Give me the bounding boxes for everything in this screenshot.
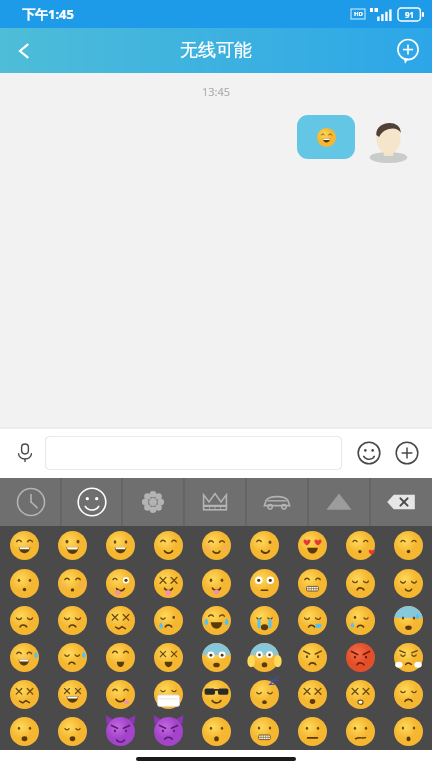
button[interactable]: WEARY xyxy=(96,639,144,676)
button[interactable]: NEUTRAL xyxy=(288,713,336,750)
button[interactable]: GRIN xyxy=(96,526,144,564)
button[interactable]: KISS_SMILE xyxy=(48,564,96,602)
button[interactable]: Voice message xyxy=(8,436,42,470)
button[interactable]: WINK xyxy=(240,526,288,564)
button[interactable]: Places xyxy=(246,478,308,526)
button[interactable]: Recent xyxy=(0,478,61,526)
button[interactable]: Add xyxy=(384,28,432,73)
button[interactable]: WINK_TONGUE xyxy=(96,564,144,602)
button[interactable]: FEARFUL xyxy=(192,639,240,676)
button[interactable]: KISS_PLAIN xyxy=(0,564,48,602)
button[interactable]: HUSHED xyxy=(384,713,432,750)
button[interactable]: GRIMACE xyxy=(288,564,336,602)
button[interactable]: LAUGH_SQUINT xyxy=(48,676,96,713)
button[interactable]: CONFUSED xyxy=(336,713,384,750)
button[interactable]: DIZZY xyxy=(288,676,336,713)
staticText: 无线可能 xyxy=(180,39,252,62)
button[interactable]: YUM xyxy=(96,676,144,713)
button[interactable]: SWEAT xyxy=(48,639,96,676)
button[interactable]: More xyxy=(390,436,424,470)
button[interactable]: SWEAT_SMILE xyxy=(0,639,48,676)
button[interactable]: ANGRY xyxy=(288,639,336,676)
button[interactable]: WORRIED_TEAR xyxy=(336,602,384,639)
button[interactable]: FROWN xyxy=(384,676,432,713)
staticText: 13:45 xyxy=(0,84,432,99)
button[interactable] xyxy=(45,436,342,470)
button[interactable]: Avatar xyxy=(365,115,412,165)
button[interactable]: GRIN_OPEN xyxy=(48,526,96,564)
button[interactable]: TIRED xyxy=(144,639,192,676)
button[interactable]: KISS_RELAX xyxy=(384,526,432,564)
button[interactable]: Nature xyxy=(122,478,184,526)
button[interactable]: GRIN_SMILE_EYES xyxy=(0,526,48,564)
staticText: 91 xyxy=(405,9,415,20)
button[interactable]: OPEN_MOUTH xyxy=(192,713,240,750)
button[interactable]: DEVIL_ANGRY xyxy=(144,713,192,750)
button[interactable]: FLUSHED_BIG xyxy=(240,564,288,602)
button[interactable]: CONFOUNDED xyxy=(96,602,144,639)
button[interactable]: PENSIVE xyxy=(336,564,384,602)
button[interactable]: JOY xyxy=(192,602,240,639)
button[interactable] xyxy=(297,115,355,159)
button[interactable]: GRIMACE2 xyxy=(240,713,288,750)
staticText: 下午1:45 xyxy=(22,5,74,23)
button[interactable]: SLEEPING xyxy=(240,676,288,713)
button[interactable]: RAGE xyxy=(336,639,384,676)
button[interactable]: HEART_EYES xyxy=(288,526,336,564)
button[interactable]: KISS_HEART xyxy=(336,526,384,564)
button[interactable]: COLD_SWEAT2 xyxy=(384,602,432,639)
button[interactable]: TONGUE xyxy=(192,564,240,602)
button[interactable]: ANGUISH2 xyxy=(48,713,96,750)
button[interactable]: UNAMUSED2 xyxy=(0,602,48,639)
button[interactable]: Backspace xyxy=(370,478,432,526)
staticText: HD xyxy=(354,10,363,18)
button[interactable]: SQUINT_TONGUE xyxy=(144,564,192,602)
button[interactable]: DIZZY2 xyxy=(336,676,384,713)
button[interactable]: Symbols xyxy=(308,478,370,526)
button[interactable]: ANGUISH xyxy=(0,713,48,750)
button[interactable]: Smileys xyxy=(61,478,122,526)
button[interactable]: TRIUMPH xyxy=(384,639,432,676)
button[interactable]: DEVIL_SMILE xyxy=(96,713,144,750)
button[interactable]: CONFOUNDED2 xyxy=(0,676,48,713)
button[interactable]: SMILE_BLUSH xyxy=(144,526,192,564)
button[interactable]: UNAMUSED xyxy=(48,602,96,639)
button[interactable]: RELAXED xyxy=(192,526,240,564)
button[interactable]: Back xyxy=(0,28,48,73)
button[interactable]: SOB xyxy=(240,602,288,639)
button[interactable]: SCREAM xyxy=(240,639,288,676)
button[interactable]: SLEEPY xyxy=(288,602,336,639)
button[interactable]: Objects xyxy=(184,478,246,526)
button[interactable]: Home xyxy=(136,757,296,761)
button[interactable]: CRY xyxy=(144,602,192,639)
button[interactable]: MASK xyxy=(144,676,192,713)
button[interactable]: SUNGLASSES xyxy=(192,676,240,713)
button[interactable]: Emoji xyxy=(352,436,386,470)
button[interactable]: RELIEVED xyxy=(384,564,432,602)
